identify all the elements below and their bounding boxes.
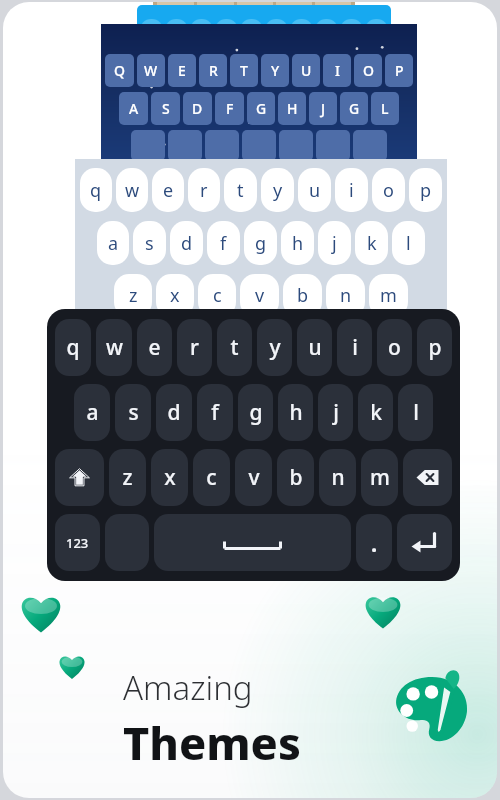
button[interactable]: y bbox=[257, 319, 292, 376]
staticText: R bbox=[209, 61, 218, 80]
staticText: e bbox=[148, 333, 161, 362]
staticText: c bbox=[213, 283, 222, 308]
staticText: n bbox=[331, 463, 345, 492]
staticText: m bbox=[370, 463, 390, 492]
staticText: n bbox=[340, 283, 352, 308]
staticText: s bbox=[145, 231, 154, 256]
staticText: q bbox=[66, 333, 80, 362]
button[interactable]: b bbox=[277, 449, 314, 506]
staticText: d bbox=[181, 231, 193, 256]
staticText: i bbox=[349, 178, 354, 203]
staticText: S bbox=[162, 99, 170, 118]
staticText: x bbox=[170, 283, 180, 308]
staticText: s bbox=[128, 398, 139, 427]
button[interactable]: Dark theme preview bbox=[47, 309, 460, 581]
button[interactable]: a bbox=[74, 384, 110, 441]
staticText: G bbox=[256, 99, 267, 118]
button[interactable]: m bbox=[361, 449, 398, 506]
staticText: o bbox=[388, 333, 401, 362]
staticText: . bbox=[371, 528, 378, 558]
button[interactable]: c bbox=[193, 449, 230, 506]
button[interactable]: d bbox=[156, 384, 192, 441]
button[interactable]: Light theme preview bbox=[75, 159, 447, 317]
staticText: h bbox=[289, 398, 303, 427]
staticText: z bbox=[129, 283, 138, 308]
staticText: f bbox=[211, 398, 219, 427]
button[interactable]: t bbox=[217, 319, 252, 376]
staticText: y bbox=[269, 333, 281, 362]
button[interactable]: Space bbox=[154, 514, 351, 571]
staticText: l bbox=[413, 398, 419, 427]
button[interactable]: r bbox=[177, 319, 212, 376]
button[interactable]: i bbox=[337, 319, 372, 376]
staticText: w bbox=[106, 333, 123, 362]
staticText: c bbox=[206, 463, 217, 492]
button[interactable]: Emoji bbox=[105, 514, 149, 571]
button[interactable]: n bbox=[319, 449, 356, 506]
staticText: q bbox=[90, 178, 102, 203]
button[interactable]: g bbox=[238, 384, 273, 441]
staticText: a bbox=[108, 231, 119, 256]
staticText: g bbox=[255, 231, 267, 256]
button[interactable]: w bbox=[96, 319, 132, 376]
button[interactable]: p bbox=[417, 319, 452, 376]
staticText: J bbox=[321, 99, 326, 118]
button[interactable]: h bbox=[278, 384, 313, 441]
button[interactable]: x bbox=[151, 449, 188, 506]
button[interactable]: Blue theme preview bbox=[137, 5, 391, 41]
staticText: j bbox=[333, 398, 339, 427]
staticText: I bbox=[335, 61, 340, 80]
button[interactable]: s bbox=[115, 384, 151, 441]
button[interactable]: Navy night theme preview bbox=[101, 24, 417, 161]
button[interactable]: Beige theme preview bbox=[153, 2, 355, 14]
button[interactable]: . bbox=[356, 514, 392, 571]
staticText: p bbox=[428, 333, 442, 362]
staticText: Q bbox=[114, 61, 125, 80]
staticText: y bbox=[273, 178, 283, 203]
button[interactable]: u bbox=[297, 319, 332, 376]
staticText: l bbox=[406, 231, 411, 256]
staticText: v bbox=[255, 283, 265, 308]
staticText: p bbox=[420, 178, 432, 203]
button[interactable]: 123 bbox=[55, 514, 100, 571]
staticText: P bbox=[395, 61, 404, 80]
staticText: F bbox=[226, 99, 234, 118]
staticText: f bbox=[220, 231, 227, 256]
button[interactable]: Shift bbox=[55, 449, 104, 506]
button[interactable]: e bbox=[137, 319, 172, 376]
button[interactable]: z bbox=[109, 449, 146, 506]
staticText: t bbox=[237, 178, 244, 203]
staticText: A bbox=[129, 99, 139, 118]
button[interactable]: Enter bbox=[397, 514, 452, 571]
button[interactable]: l bbox=[398, 384, 433, 441]
button[interactable]: v bbox=[235, 449, 272, 506]
staticText: G bbox=[349, 99, 360, 118]
staticText: k bbox=[370, 398, 382, 427]
button[interactable]: q bbox=[55, 319, 91, 376]
staticText: O bbox=[363, 61, 374, 80]
staticText: D bbox=[192, 99, 203, 118]
staticText: b bbox=[297, 283, 309, 308]
staticText: Themes bbox=[123, 712, 301, 773]
staticText: L bbox=[381, 99, 389, 118]
staticText: E bbox=[178, 61, 186, 80]
button[interactable]: Themes palette bbox=[386, 664, 478, 756]
staticText: m bbox=[380, 283, 397, 308]
staticText: x bbox=[164, 463, 176, 492]
staticText: o bbox=[383, 178, 394, 203]
button[interactable]: f bbox=[197, 384, 233, 441]
staticText: a bbox=[86, 398, 99, 427]
button[interactable]: Backspace bbox=[403, 449, 452, 506]
button[interactable]: o bbox=[377, 319, 412, 376]
staticText: t bbox=[230, 333, 239, 362]
staticText: Amazing bbox=[123, 665, 253, 710]
staticText: h bbox=[292, 231, 304, 256]
staticText: Y bbox=[271, 61, 280, 80]
staticText: z bbox=[122, 463, 133, 492]
button[interactable]: k bbox=[358, 384, 393, 441]
button[interactable]: j bbox=[318, 384, 353, 441]
staticText: u bbox=[308, 333, 322, 362]
staticText: r bbox=[190, 333, 199, 362]
staticText: j bbox=[332, 231, 337, 256]
staticText: w bbox=[125, 178, 140, 203]
